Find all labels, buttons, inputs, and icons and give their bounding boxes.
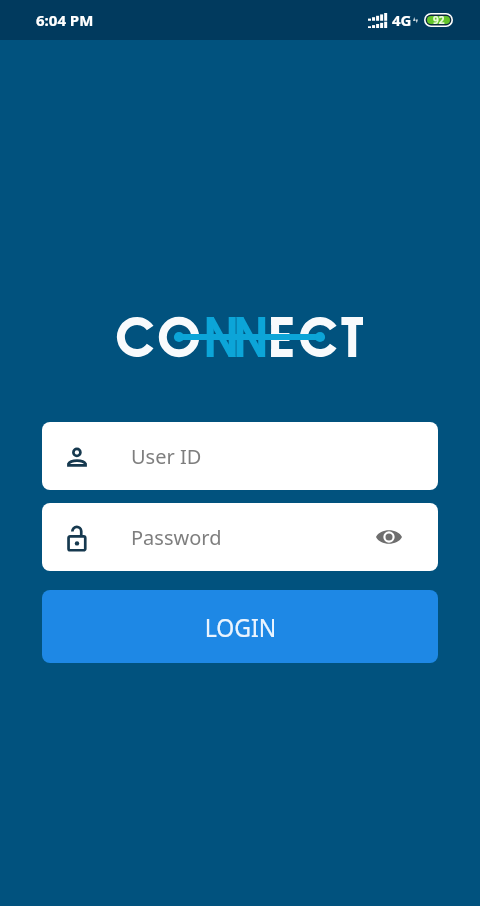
staticText: LOGIN: [205, 609, 276, 644]
button[interactable]: Show password: [374, 522, 404, 552]
button[interactable]: LOGIN: [42, 590, 438, 663]
staticText: 4G: [392, 10, 412, 30]
button[interactable]: Password: [42, 503, 438, 571]
staticText: 6:04 PM: [36, 10, 94, 30]
button[interactable]: User ID: [42, 422, 438, 490]
staticText: User ID: [131, 443, 202, 470]
staticText: 92: [433, 13, 445, 27]
staticText: Password: [131, 524, 222, 551]
